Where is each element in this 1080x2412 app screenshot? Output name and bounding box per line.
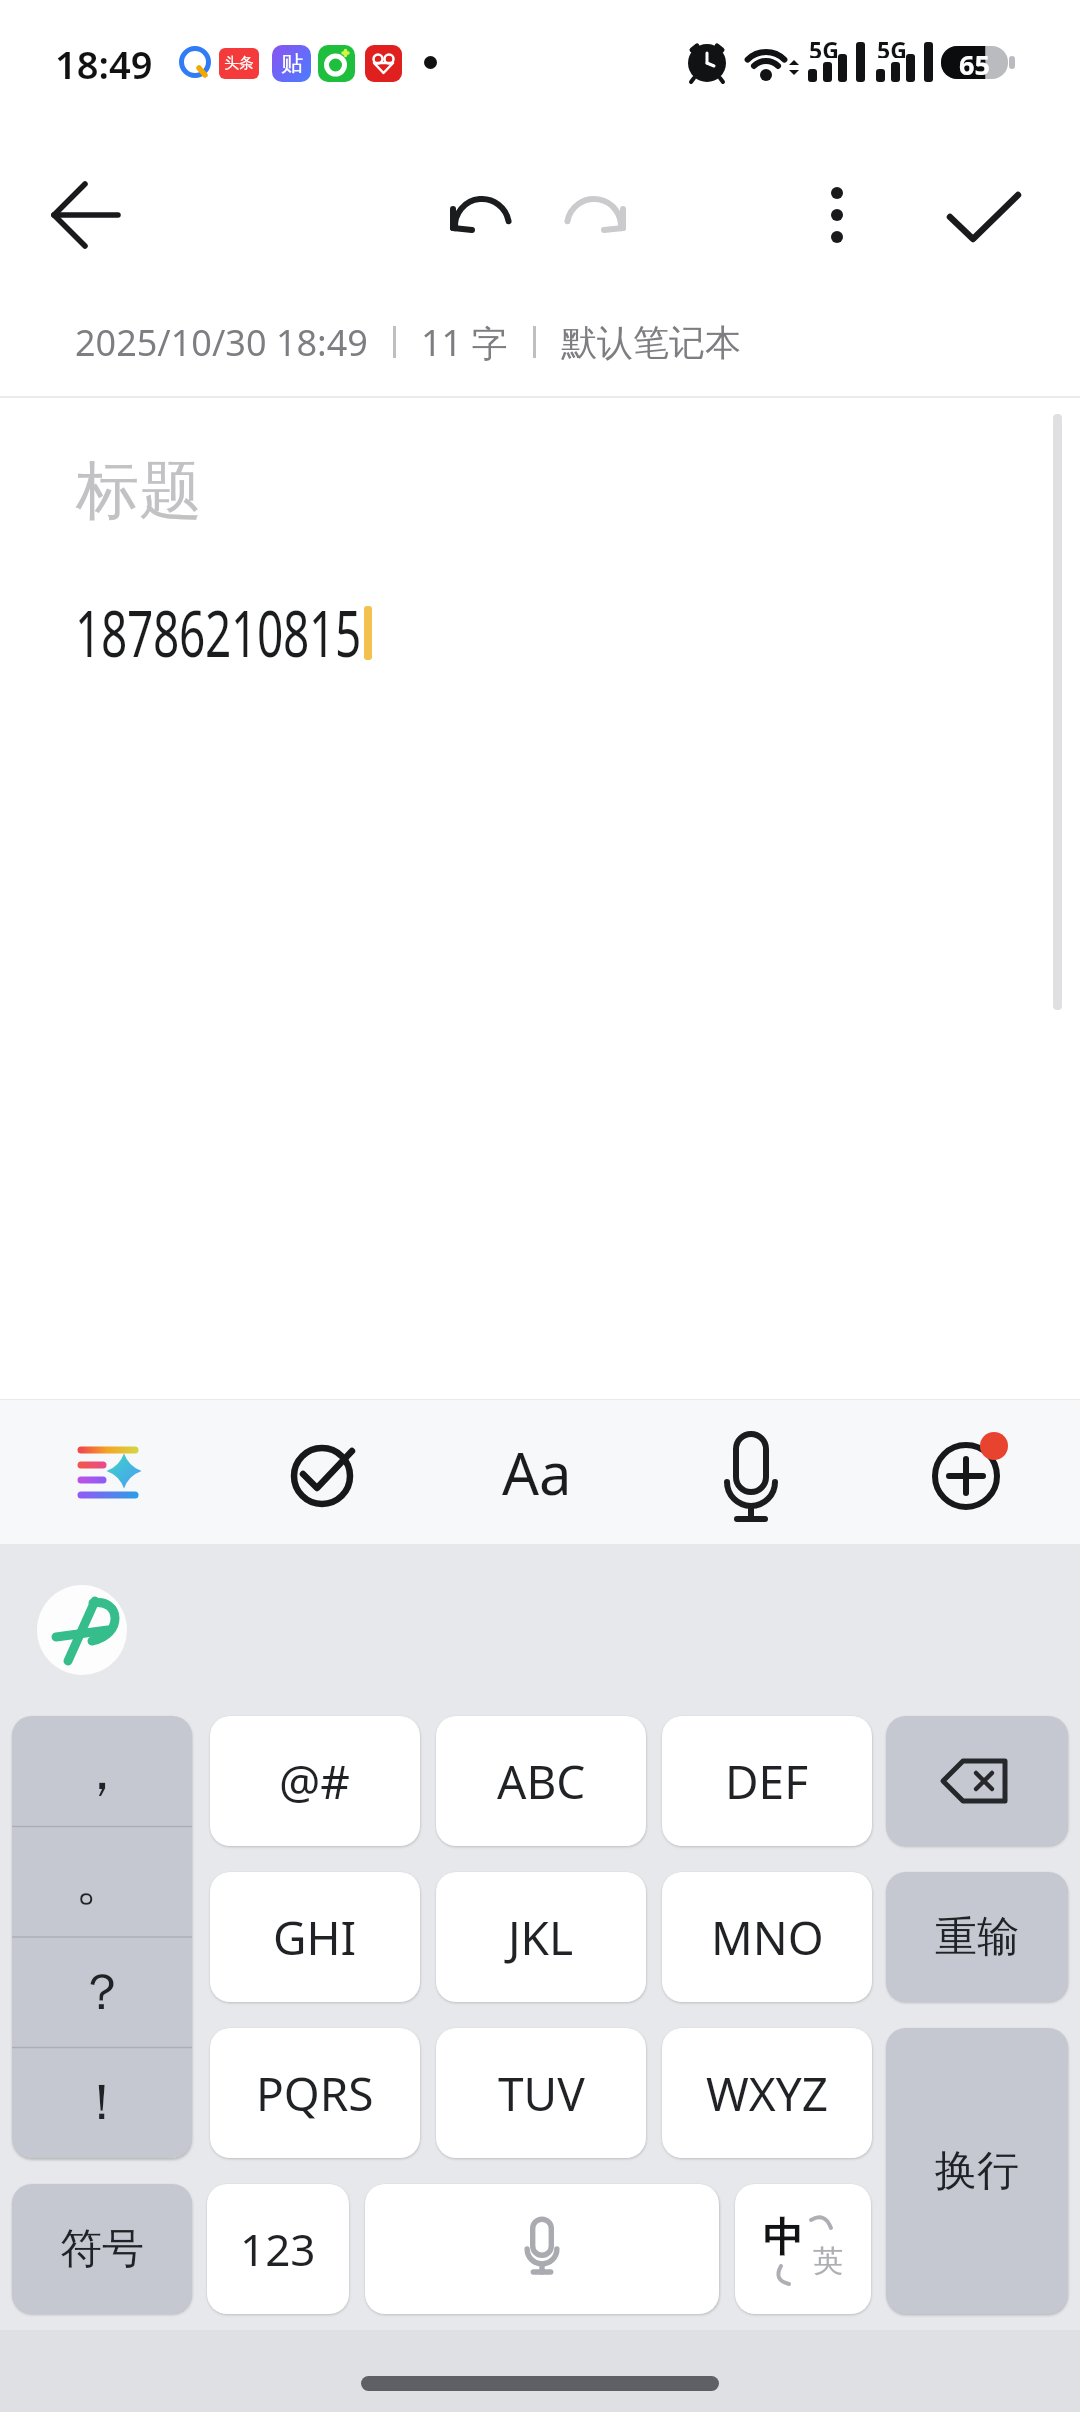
button[interactable] <box>37 1585 127 1675</box>
staticText: 中 <box>763 2212 803 2262</box>
button[interactable]: @# <box>210 1716 420 1846</box>
staticText: 默认笔记本 <box>561 320 741 365</box>
button[interactable]: 换行 <box>886 2028 1068 2314</box>
staticText: 重输 <box>935 1911 1019 1964</box>
staticText: 英 <box>813 2242 843 2280</box>
button[interactable]: 123 <box>207 2184 349 2314</box>
staticText: GHI <box>273 1906 357 1969</box>
staticText: 18:49 <box>55 38 153 88</box>
staticText: 18786210815 <box>75 588 362 677</box>
button[interactable]: MNO <box>662 1872 872 2002</box>
button[interactable] <box>286 1436 362 1508</box>
staticText: ？ <box>77 1961 127 2024</box>
staticText: @# <box>279 1750 351 1813</box>
staticText: WXYZ <box>706 2062 829 2125</box>
button[interactable]: JKL <box>436 1872 646 2002</box>
button[interactable] <box>552 190 636 246</box>
staticText: 5G <box>809 34 839 58</box>
button[interactable]: PQRS <box>210 2028 420 2158</box>
staticText: MNO <box>711 1906 824 1969</box>
button[interactable]: 重输 <box>886 1872 1068 2002</box>
staticText: 贴 <box>281 50 303 78</box>
staticText: JKL <box>508 1906 574 1969</box>
button[interactable]: WXYZ <box>662 2028 872 2158</box>
button[interactable] <box>805 180 869 250</box>
staticText: ABC <box>497 1750 586 1813</box>
staticText: 。 <box>75 1847 129 1915</box>
button[interactable] <box>940 184 1028 246</box>
button[interactable]: DEF <box>662 1716 872 1846</box>
button[interactable]: ABC <box>436 1716 646 1846</box>
staticText: 标题 <box>76 451 202 530</box>
staticText: PQRS <box>256 2062 374 2125</box>
staticText: 换行 <box>935 2145 1019 2198</box>
button[interactable] <box>70 1438 150 1508</box>
button[interactable] <box>716 1434 786 1530</box>
staticText: 符号 <box>60 2223 144 2276</box>
button[interactable]: 符号 <box>12 2184 192 2314</box>
button[interactable] <box>365 2184 719 2314</box>
staticText: Aa <box>502 1433 572 1512</box>
button[interactable] <box>440 190 524 246</box>
button[interactable]: Aa <box>490 1430 584 1514</box>
staticText: ！ <box>77 2071 127 2134</box>
button[interactable]: 标题 <box>76 442 576 538</box>
staticText: 65 <box>959 46 990 80</box>
button[interactable]: TUV <box>436 2028 646 2158</box>
button[interactable] <box>886 1716 1068 1846</box>
button[interactable] <box>40 184 132 246</box>
button[interactable]: ， <box>12 1716 192 2158</box>
staticText: ， <box>75 1737 129 1805</box>
staticText: TUV <box>498 2062 585 2125</box>
staticText: DEF <box>725 1750 809 1813</box>
staticText: 11 字 <box>421 318 508 366</box>
staticText: 5G <box>877 34 907 58</box>
staticText: 2025/10/30 18:49 <box>75 318 368 366</box>
staticText: 头条 <box>224 54 254 73</box>
staticText: 123 <box>240 2219 316 2279</box>
button[interactable]: 中 <box>735 2184 871 2314</box>
button[interactable] <box>928 1436 1010 1514</box>
button[interactable]: 18786210815 <box>75 598 575 666</box>
button[interactable]: GHI <box>210 1872 420 2002</box>
